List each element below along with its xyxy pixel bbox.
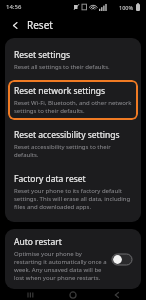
staticText: 14:56 [6,3,22,11]
staticText: Reset settings [14,49,70,61]
button[interactable]: Auto restart [5,229,141,289]
staticText: Reset accessibility settings [14,129,120,141]
button[interactable]: Back [7,17,23,33]
staticText: Reset your phone to its factory default … [14,187,132,211]
button[interactable]: Auto restart toggle [112,254,132,265]
button[interactable]: Reset network settings [8,80,138,120]
button[interactable]: Factory data reset [8,168,138,216]
staticText: Reset Wi-Fi, Bluetooth, and other networ… [14,99,132,115]
button[interactable]: Reset settings [8,44,138,76]
staticText: Reset all settings to their defaults. [14,63,110,71]
staticText: Optimise your phone by restarting it aut… [14,250,108,282]
staticText: Reset accessibility settings to their de… [14,143,132,159]
staticText: Auto restart [14,236,62,248]
staticText: Reset [27,18,53,32]
button[interactable]: Back [103,289,131,300]
staticText: Reset network settings [14,85,106,97]
button[interactable]: Recents [16,289,44,300]
staticText: Factory data reset [14,173,86,185]
staticText: 100% [119,4,134,11]
button[interactable]: Home [59,289,87,300]
button[interactable]: Reset accessibility settings [8,124,138,164]
